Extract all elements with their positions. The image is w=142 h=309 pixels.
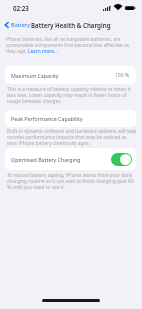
- staticText: Maximum Capacity: [11, 72, 59, 79]
- staticText: This is a measure of battery capacity re…: [7, 86, 137, 104]
- staticText: Phone batteries, like all rechargeable b…: [6, 36, 137, 54]
- staticText: Built-in dynamic software and hardware s…: [7, 128, 137, 146]
- button[interactable]: Optimised Battery Charging: [111, 153, 132, 166]
- staticText: Optimised Battery Charging: [11, 156, 81, 163]
- staticText: Battery: [11, 21, 31, 29]
- staticText: Peak Performance Capability: [11, 115, 83, 122]
- staticText: Battery Health & Charging: [31, 21, 111, 29]
- button[interactable]: Maximum Capacity: [5, 66, 136, 84]
- staticText: 02:23: [13, 4, 29, 12]
- staticText: 100 %: [115, 72, 130, 79]
- button[interactable]: Battery: [4, 21, 31, 29]
- staticText: To reduce battery ageing, iPhone learns …: [7, 172, 137, 190]
- button[interactable]: Peak Performance Capability: [5, 110, 136, 127]
